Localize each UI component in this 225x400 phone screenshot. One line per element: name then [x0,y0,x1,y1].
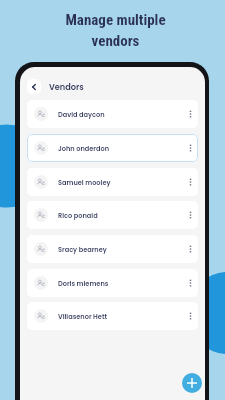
button[interactable]: Doris mlemens [27,269,198,297]
staticText: Vendors [49,81,84,92]
button[interactable]: John onderdon [27,134,198,162]
button[interactable]: Samuel mooley [27,168,198,196]
staticText: David daycon [58,110,105,119]
staticText: Sracy bearney [58,245,107,254]
staticText: Samuel mooley [58,178,111,187]
button[interactable]: David daycon [27,100,198,128]
staticText: John onderdon [58,144,110,153]
button[interactable]: Villasenor Hett [27,302,198,330]
button[interactable]: Add vendor [182,373,202,393]
button[interactable]: Rico ponald [27,201,198,229]
staticText: Villasenor Hett [58,312,108,321]
staticText: Doris mlemens [58,279,109,288]
staticText: Manage multiple vendors [65,11,166,49]
staticText: Rico ponald [58,211,98,220]
button[interactable]: Sracy bearney [27,235,198,263]
button[interactable]: Back [27,79,41,94]
